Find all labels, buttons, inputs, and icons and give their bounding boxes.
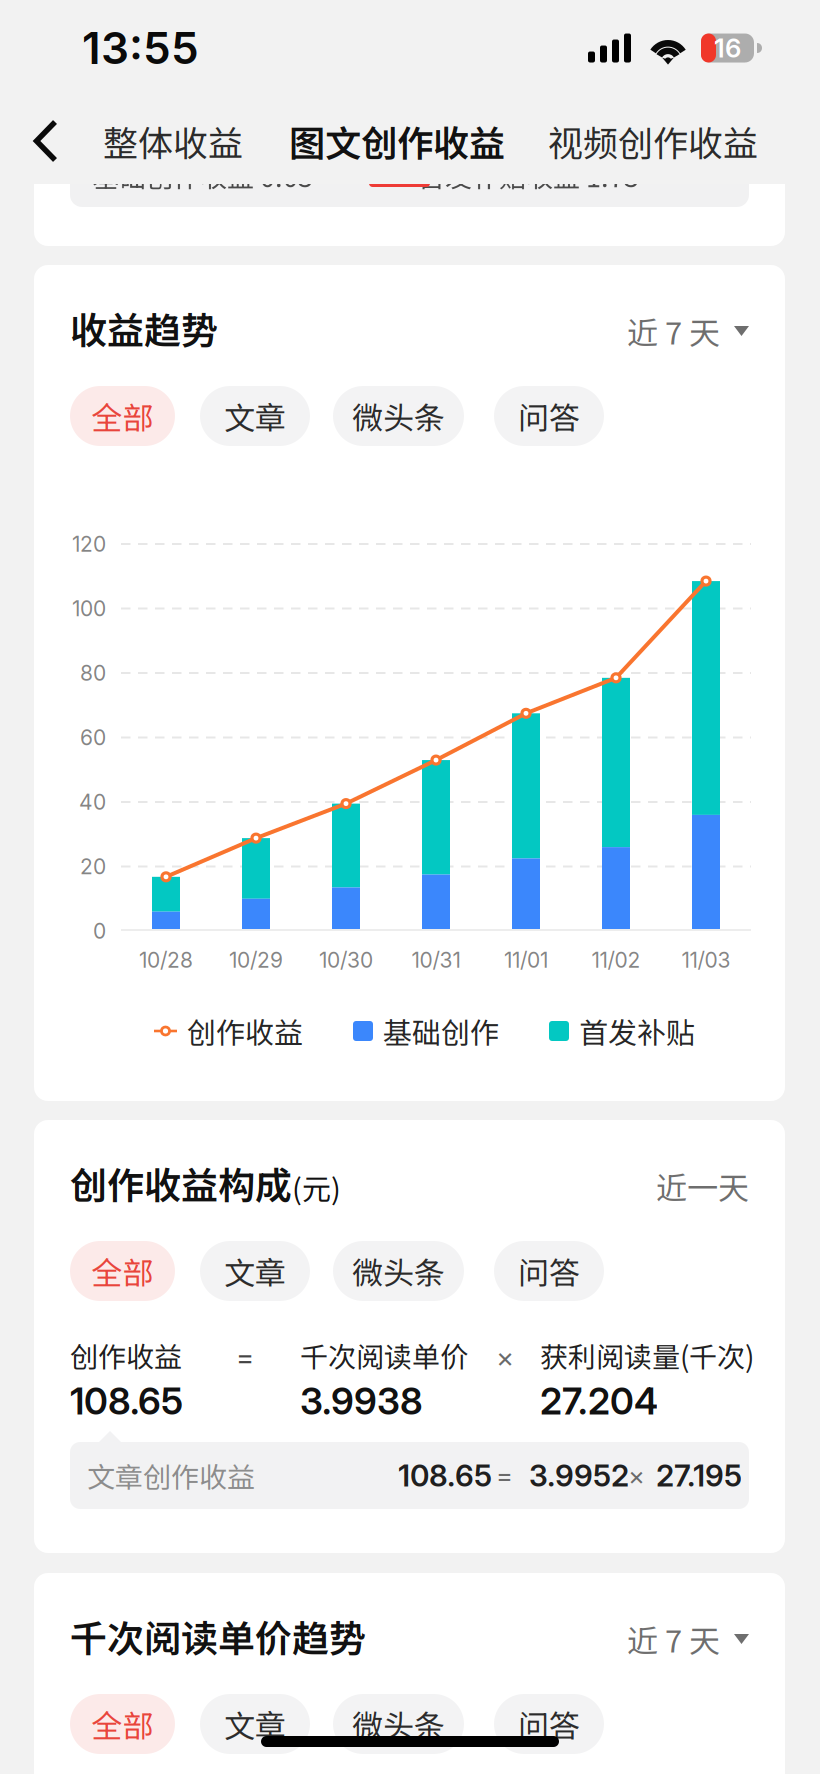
staticText: 10/30 (319, 947, 373, 973)
staticText: = (496, 1460, 513, 1491)
button[interactable]: 全部 (70, 1241, 175, 1301)
staticText: 微头条 (352, 1249, 445, 1293)
button[interactable]: Back (21, 107, 71, 175)
staticText: 千次阅读单价趋势 (70, 1609, 366, 1663)
staticText: 16 (714, 32, 741, 64)
button[interactable]: 微头条 (333, 1241, 464, 1301)
staticText: × (496, 1340, 514, 1374)
staticText: 10/28 (139, 947, 193, 973)
button[interactable]: 全部 (70, 1694, 175, 1754)
staticText: 问答 (518, 1249, 580, 1293)
staticText: 文章 (224, 394, 286, 438)
staticText: 27.204 (540, 1378, 658, 1423)
staticText: 近一天 (656, 1164, 749, 1208)
staticText: 120 (72, 531, 106, 557)
staticText: 基础创作 (383, 1010, 499, 1052)
staticText: 20 (80, 854, 106, 879)
staticText: 全部 (91, 1702, 153, 1746)
button[interactable]: 近 7 天 (627, 1615, 749, 1663)
button[interactable]: 全部 (70, 386, 175, 446)
button[interactable]: 文章 (200, 1694, 310, 1754)
staticText: 创作收益 (70, 1335, 182, 1375)
staticText: 基础创作收益 0.03 (92, 156, 313, 195)
staticText: 千次阅读单价 (300, 1335, 468, 1375)
staticText: 3.9938 (300, 1378, 423, 1423)
staticText: 108.65 (398, 1457, 492, 1494)
staticText: × (628, 1460, 645, 1491)
staticText: 27.195 (656, 1457, 742, 1494)
staticText: 获利阅读量(千次) (540, 1335, 754, 1375)
button[interactable]: 文章 (200, 1241, 310, 1301)
button[interactable]: 微头条 (333, 1694, 464, 1754)
button[interactable]: 图文创作收益 (289, 107, 505, 175)
button[interactable]: 近 7 天 (627, 307, 749, 355)
staticText: 微头条 (352, 1702, 445, 1746)
button[interactable]: 问答 (494, 1241, 604, 1301)
button[interactable]: 微头条 (333, 386, 464, 446)
staticText: 收益趋势 (70, 301, 218, 355)
button[interactable]: 近一天 (656, 1162, 749, 1210)
staticText: 3.9952 (529, 1457, 629, 1494)
button[interactable]: 问答 (494, 386, 604, 446)
staticText: 全部 (91, 1249, 153, 1293)
staticText: = (236, 1340, 254, 1374)
staticText: 问答 (518, 1702, 580, 1746)
staticText: 11/03 (681, 947, 730, 973)
staticText: 全部 (91, 394, 153, 438)
button[interactable]: 视频创作收益 (548, 107, 758, 175)
staticText: 40 (79, 789, 106, 815)
staticText: 80 (80, 660, 106, 686)
staticText: 微头条 (352, 394, 445, 438)
staticText: 100 (72, 596, 106, 621)
staticText: 首发补贴 (579, 1010, 695, 1052)
button[interactable]: 整体收益 (103, 107, 243, 175)
staticText: 11/02 (591, 947, 640, 973)
staticText: 创作收益构成 (70, 1156, 292, 1210)
button[interactable]: 问答 (494, 1694, 604, 1754)
staticText: 文章 (224, 1249, 286, 1293)
staticText: 首发补贴收益 1.73 (418, 156, 639, 195)
staticText: 整体收益 (103, 116, 243, 166)
staticText: 11/01 (504, 947, 548, 973)
staticText: 视频创作收益 (548, 116, 758, 166)
staticText: 创作收益 (187, 1010, 303, 1052)
staticText: 文章 (224, 1702, 286, 1746)
staticText: 近 7 天 (627, 1617, 720, 1661)
staticText: 108.65 (70, 1378, 183, 1423)
staticText: (元) (292, 1166, 341, 1208)
staticText: 近 7 天 (627, 309, 720, 353)
staticText: 10/31 (411, 947, 460, 973)
staticText: 10/29 (229, 947, 283, 973)
staticText: 问答 (518, 394, 580, 438)
staticText: 13:55 (82, 21, 199, 75)
staticText: 文章创作收益 (87, 1455, 255, 1496)
button[interactable]: 文章 (200, 386, 310, 446)
staticText: 0 (93, 918, 106, 944)
staticText: 图文创作收益 (289, 115, 505, 167)
staticText: 60 (80, 725, 106, 750)
